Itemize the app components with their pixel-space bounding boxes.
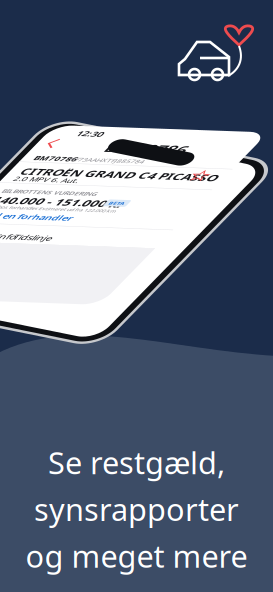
- staticText: Se restgæld,: [48, 442, 225, 483]
- staticText: BM70786: [65, 165, 103, 176]
- staticText: VF73AAHXTFJ885784: [97, 166, 162, 175]
- staticText: Tidslinje: [113, 272, 147, 284]
- staticText: CITROËN GRAND C4 PICASSO: [65, 181, 238, 197]
- staticText: BM70786: [117, 142, 188, 163]
- staticText: BILBROTTENS VURDERING: [65, 212, 149, 221]
- staticText: og meget mere: [25, 535, 247, 576]
- staticText: 12:30: [81, 129, 104, 141]
- staticText: synsrapporter: [34, 489, 239, 529]
- staticText: 2.0 MPV 6. Aut.: [65, 194, 122, 205]
- staticText: Find en forhandler: [65, 244, 148, 256]
